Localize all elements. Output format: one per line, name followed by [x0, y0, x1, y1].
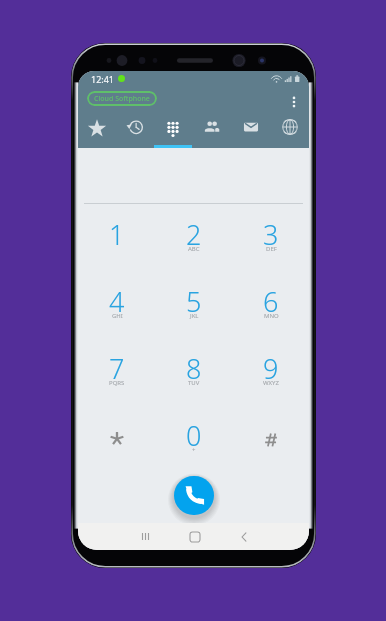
- staticText: JKL: [190, 312, 199, 320]
- staticText: WXYZ: [263, 379, 279, 387]
- button[interactable]: Back: [219, 523, 268, 550]
- button[interactable]: 1: [78, 216, 155, 283]
- button[interactable]: Call: [174, 476, 214, 515]
- button[interactable]: [232, 417, 309, 484]
- button[interactable]: 8: [155, 350, 232, 417]
- button[interactable]: 6: [232, 283, 309, 350]
- button[interactable]: More options: [283, 91, 305, 113]
- button[interactable]: Home: [170, 523, 219, 550]
- button[interactable]: 9: [232, 350, 309, 417]
- staticText: ABC: [188, 245, 200, 253]
- button[interactable]: Call history: [116, 116, 154, 148]
- button[interactable]: [78, 417, 155, 484]
- staticText: TUV: [188, 379, 200, 387]
- button[interactable]: Web: [270, 116, 309, 148]
- staticText: Cloud Softphone: [94, 94, 150, 104]
- staticText: GHI: [112, 312, 123, 320]
- button[interactable]: 3: [232, 216, 309, 283]
- button[interactable]: 4: [78, 283, 155, 350]
- button[interactable]: 5: [155, 283, 232, 350]
- staticText: 12:41: [91, 73, 115, 85]
- button[interactable]: Recents: [120, 523, 170, 550]
- staticText: 1: [109, 216, 125, 253]
- staticText: 3: [263, 216, 279, 253]
- staticText: DEF: [266, 245, 277, 253]
- button[interactable]: Favorites: [78, 116, 116, 148]
- staticText: 9: [263, 350, 279, 387]
- staticText: +: [192, 446, 196, 454]
- staticText: MNO: [264, 312, 279, 320]
- button[interactable]: Contacts: [192, 116, 231, 148]
- button[interactable]: 2: [155, 216, 232, 283]
- staticText: 7: [109, 350, 125, 387]
- staticText: PQRS: [109, 379, 125, 387]
- staticText: 5: [186, 283, 202, 320]
- staticText: 0: [186, 417, 202, 454]
- staticText: 2: [186, 216, 202, 253]
- button[interactable]: Dialpad: [154, 116, 192, 148]
- staticText: 6: [263, 283, 279, 320]
- button[interactable]: 7: [78, 350, 155, 417]
- staticText: 8: [186, 350, 202, 387]
- button[interactable]: 0: [155, 417, 232, 484]
- staticText: 4: [109, 283, 125, 320]
- button[interactable]: Voicemail: [231, 116, 270, 148]
- button[interactable]: Cloud Softphone: [87, 91, 157, 106]
